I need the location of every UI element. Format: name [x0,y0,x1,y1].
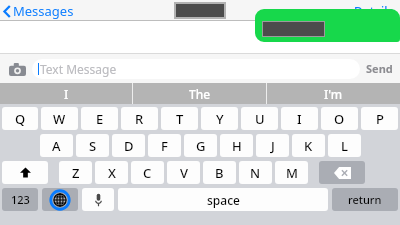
staticText: The [189,86,211,102]
staticText: return [348,192,382,207]
staticText: W [53,110,66,128]
button[interactable]: return [332,188,398,211]
button[interactable]: Shift [2,161,48,184]
button[interactable]: R [121,107,158,130]
button[interactable]: Details [348,3,400,19]
button[interactable]: P [361,107,398,130]
staticText: Details [354,3,394,19]
staticText: Z [72,164,80,182]
button[interactable]: M [275,161,308,184]
staticText: A [52,137,61,155]
staticText: G [196,137,206,155]
button[interactable]: 123 [2,188,38,211]
staticText: I [297,110,302,128]
button[interactable]: The [133,83,266,104]
staticText: F [161,137,168,155]
button[interactable]: A [40,134,73,157]
button[interactable]: S [76,134,109,157]
staticText: B [215,164,224,182]
button[interactable]: B [203,161,236,184]
button[interactable]: F [148,134,181,157]
button[interactable]: W [41,107,78,130]
button[interactable] [255,9,400,42]
button[interactable]: E [81,107,118,130]
staticText: X [108,164,116,182]
button[interactable]: H [220,134,253,157]
button[interactable]: Take photo [5,58,30,80]
button[interactable]: V [167,161,200,184]
staticText: N [250,164,261,182]
staticText: V [180,164,188,182]
staticText: O [334,110,345,128]
button[interactable]: I'm [267,83,400,104]
button[interactable]: J [256,134,289,157]
staticText: I'm [324,86,343,102]
staticText: D [124,137,134,155]
staticText: K [304,137,313,155]
button[interactable]: space [118,188,328,211]
button[interactable]: Send [364,61,395,76]
button[interactable]: I [281,107,318,130]
staticText: I [64,86,69,102]
staticText: J [271,137,275,155]
button[interactable]: N [239,161,272,184]
button[interactable]: O [321,107,358,130]
staticText: Q [15,110,26,128]
button[interactable]: Messages [0,2,82,20]
button[interactable]: Delete [319,161,365,184]
button[interactable]: C [131,161,164,184]
staticText: Send [366,61,393,76]
button[interactable]: Text Message [32,59,360,79]
staticText: 123 [11,192,30,207]
staticText: S [89,137,97,155]
button[interactable]: T [161,107,198,130]
button[interactable]: G [184,134,217,157]
staticText: U [255,110,265,128]
button[interactable]: Dictate [82,188,114,211]
button[interactable]: Change keyboard [42,188,78,211]
staticText: Messages [13,2,74,20]
staticText: T [176,110,184,128]
staticText: C [143,164,152,182]
button[interactable]: Z [59,161,92,184]
staticText: E [96,110,104,128]
button[interactable]: I [0,83,132,104]
staticText: L [341,137,348,155]
staticText: M [286,164,298,182]
staticText: P [376,110,384,128]
button[interactable]: U [241,107,278,130]
staticText: space [207,192,240,208]
staticText: Text Message [40,61,117,77]
button[interactable]: L [328,134,361,157]
button[interactable]: Q [2,107,38,130]
staticText: Y [216,110,224,128]
button[interactable]: D [112,134,145,157]
staticText: R [135,110,144,128]
button[interactable]: X [95,161,128,184]
button[interactable]: K [292,134,325,157]
button[interactable]: Y [201,107,238,130]
staticText: H [232,137,242,155]
